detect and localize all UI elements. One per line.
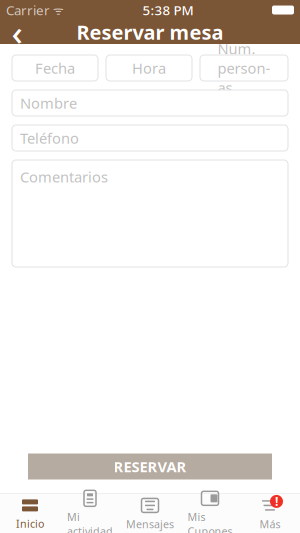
- staticText: Reservar mesa: [76, 19, 223, 45]
- staticText: Más: [259, 517, 280, 531]
- button[interactable]: Comentarios: [12, 160, 288, 267]
- button[interactable]: Teléfono: [12, 125, 288, 151]
- staticText: ᯤ: [50, 2, 64, 18]
- staticText: Mensajes: [126, 517, 174, 531]
- button[interactable]: !: [240, 492, 300, 533]
- button[interactable]: Back: [0, 20, 34, 44]
- staticText: Mis Cupones: [187, 510, 232, 533]
- staticText: Fecha: [35, 58, 75, 78]
- staticText: Hora: [132, 58, 166, 78]
- button[interactable]: RESERVAR: [28, 453, 272, 479]
- button[interactable]: Num. personas: [200, 55, 288, 81]
- staticText: Inicio: [16, 516, 44, 531]
- staticText: Mi actividad: [67, 510, 113, 533]
- button[interactable]: Fecha: [12, 55, 98, 81]
- button[interactable]: Hora: [106, 55, 192, 81]
- button[interactable]: Mi actividad: [60, 485, 120, 533]
- staticText: !: [275, 493, 278, 509]
- staticText: RESERVAR: [113, 457, 186, 476]
- button[interactable]: Inicio: [0, 492, 60, 533]
- button[interactable]: Mensajes: [120, 492, 180, 533]
- staticText: 5:38 PM: [142, 1, 193, 19]
- staticText: Nombre: [20, 93, 77, 113]
- staticText: Comentarios: [20, 167, 108, 186]
- button[interactable]: Nombre: [12, 90, 288, 116]
- staticText: Teléfono: [20, 128, 79, 148]
- staticText: Carrier: [6, 1, 50, 19]
- staticText: Num. personas: [217, 39, 270, 97]
- staticText: ‹: [11, 9, 22, 55]
- button[interactable]: Mis Cupones: [180, 485, 240, 533]
